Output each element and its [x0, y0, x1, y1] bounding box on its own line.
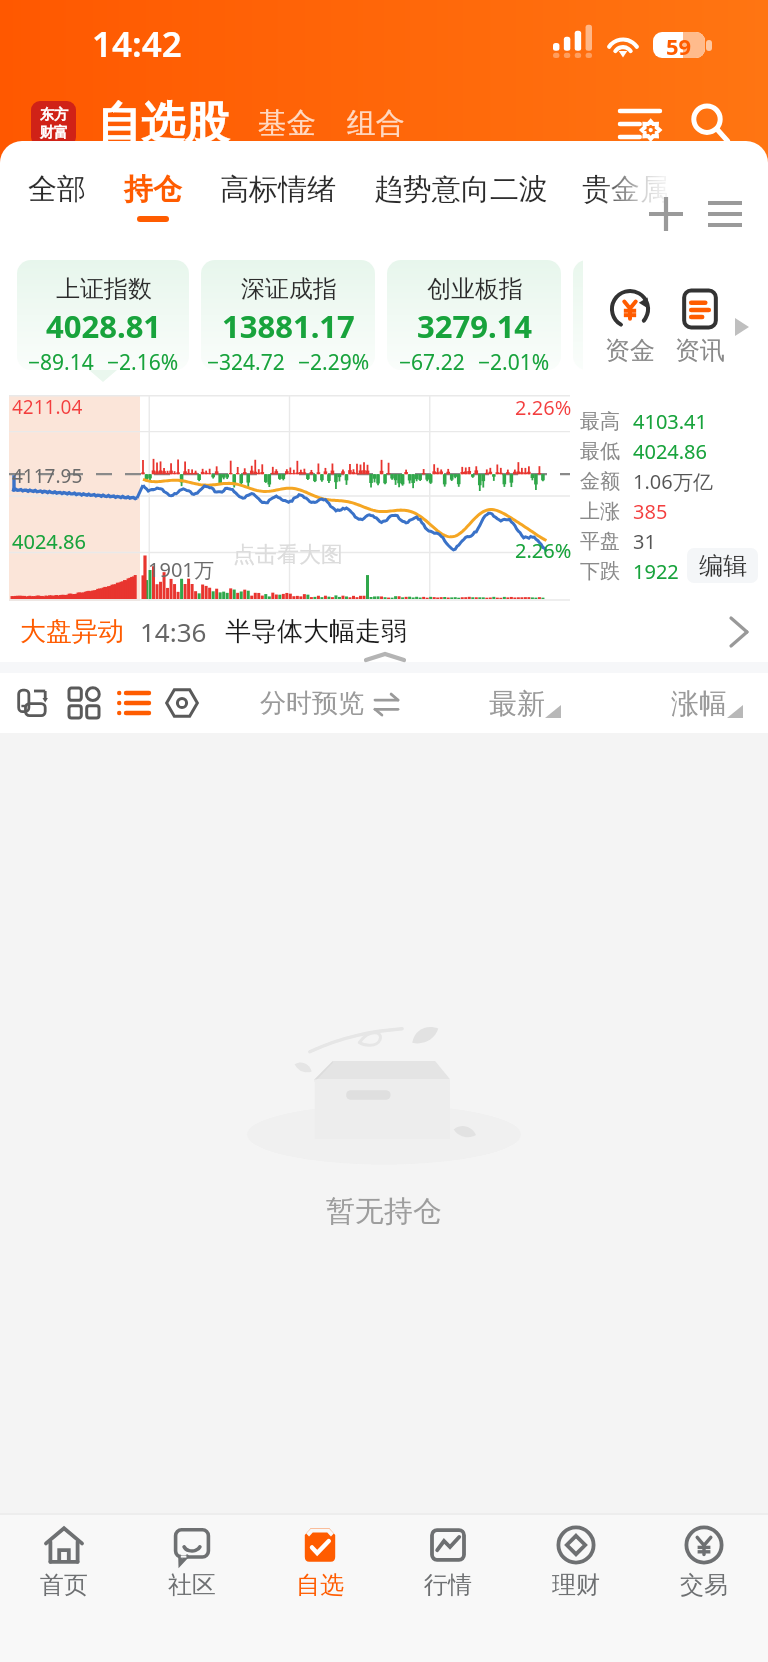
staticText: 点击看大图: [233, 541, 343, 569]
staticText: 贵金属: [582, 171, 669, 208]
staticText: 59: [666, 32, 692, 57]
button[interactable]: 大盘异动: [0, 601, 768, 662]
button[interactable]: Grid view: [60, 679, 108, 727]
staticText: 31: [633, 528, 656, 555]
staticText: 首页: [40, 1570, 88, 1600]
staticText: 最高: [580, 409, 620, 434]
button[interactable]: 贵金属: [582, 171, 669, 222]
staticText: 社区: [168, 1570, 216, 1600]
staticText: −2.16%: [107, 348, 179, 370]
button[interactable]: 理财: [512, 1515, 640, 1662]
staticText: 编辑: [699, 551, 747, 581]
staticText: 2.26%: [515, 537, 572, 564]
staticText: 4024.86: [12, 528, 86, 555]
staticText: 交易: [680, 1570, 728, 1600]
staticText: 4103.41: [633, 408, 707, 435]
button[interactable]: Filter settings: [610, 93, 672, 155]
staticText: 上涨: [580, 499, 620, 524]
staticText: −89.14: [28, 348, 94, 370]
staticText: 深证成指: [241, 274, 337, 304]
staticText: 14:42: [92, 20, 182, 68]
staticText: 13881.17: [222, 305, 355, 347]
button[interactable]: 资讯: [665, 287, 735, 366]
staticText: 1901万: [148, 556, 214, 583]
staticText: 1.06万亿: [633, 468, 713, 495]
button[interactable]: Search: [680, 93, 742, 155]
button[interactable]: 创业板指: [387, 260, 561, 370]
button[interactable]: 上证指数: [17, 260, 189, 370]
button[interactable]: 资金: [595, 287, 665, 366]
staticText: 3279.14: [417, 305, 533, 347]
button[interactable]: 涨幅: [671, 686, 743, 721]
staticText: −67.22: [399, 348, 465, 370]
button[interactable]: 社区: [128, 1515, 256, 1662]
staticText: −324.72: [207, 348, 285, 370]
button[interactable]: 分时预览: [260, 687, 398, 720]
staticText: 平盘: [580, 529, 620, 554]
staticText: 财富: [40, 124, 68, 142]
staticText: 大盘异动: [20, 615, 124, 648]
staticText: 理财: [552, 1570, 600, 1600]
staticText: 4117.95: [12, 463, 83, 489]
button[interactable]: Chart settings: [158, 679, 206, 727]
staticText: 资讯: [675, 335, 725, 366]
staticText: 资金: [605, 335, 655, 366]
staticText: 上证指数: [56, 274, 152, 304]
staticText: 半导体大幅走弱: [225, 615, 407, 648]
staticText: 自选股: [97, 96, 229, 151]
staticText: 高标情绪: [220, 171, 336, 208]
staticText: 4211.04: [12, 394, 83, 420]
staticText: 14:36: [140, 614, 207, 649]
button[interactable]: 持仓: [124, 171, 182, 222]
staticText: 最新: [489, 686, 545, 721]
button[interactable]: 行情: [384, 1515, 512, 1662]
staticText: 创业板指: [427, 274, 523, 304]
staticText: 涨幅: [671, 686, 727, 721]
staticText: 2.26%: [515, 394, 572, 421]
staticText: 最低: [580, 439, 620, 464]
button[interactable]: Add group: [641, 189, 691, 239]
button[interactable]: 深证成指: [201, 260, 375, 370]
button[interactable]: 首页: [0, 1515, 128, 1662]
button[interactable]: Manage groups: [700, 189, 750, 239]
staticText: 全部: [28, 171, 86, 208]
staticText: 385: [633, 498, 668, 525]
staticText: 分时预览: [260, 687, 364, 720]
button[interactable]: 高标情绪: [220, 171, 336, 222]
staticText: 趋势意向二波: [374, 171, 548, 208]
button[interactable]: 自选: [256, 1515, 384, 1662]
staticText: 组合: [347, 105, 405, 142]
staticText: 4028.81: [46, 305, 162, 347]
staticText: 暂无持仓: [326, 1193, 442, 1230]
button[interactable]: 最新: [489, 686, 561, 721]
staticText: 4024.86: [633, 438, 707, 465]
button[interactable]: 全部: [28, 171, 86, 222]
staticText: 行情: [424, 1570, 472, 1600]
button[interactable]: List view: [109, 679, 157, 727]
staticText: −2.29%: [298, 348, 370, 370]
button[interactable]: 交易: [640, 1515, 768, 1662]
staticText: 东方: [40, 106, 68, 124]
staticText: −2.01%: [478, 348, 550, 370]
staticText: 1922: [633, 558, 679, 585]
staticText: 金额: [580, 469, 620, 494]
button[interactable]: 趋势意向二波: [374, 171, 548, 222]
button[interactable]: 编辑: [687, 548, 758, 583]
button[interactable]: Split view: [11, 679, 59, 727]
staticText: 自选: [296, 1570, 344, 1600]
staticText: 持仓: [124, 171, 182, 208]
staticText: 基金: [258, 105, 316, 142]
staticText: 下跌: [580, 559, 620, 584]
